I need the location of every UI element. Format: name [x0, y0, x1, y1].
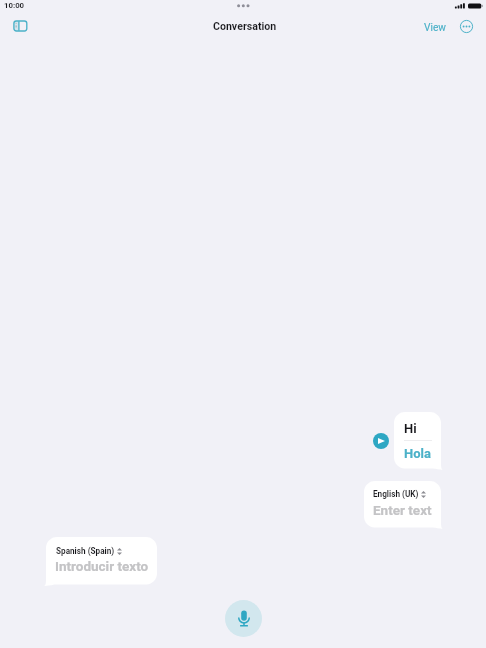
- staticText: Hola: [404, 446, 431, 461]
- button[interactable]: Hi: [394, 412, 443, 470]
- button[interactable]: View: [419, 17, 452, 39]
- staticText: Conversation: [213, 20, 277, 32]
- button[interactable]: Play translation: [373, 433, 389, 449]
- staticText: Introducir texto: [55, 558, 149, 574]
- staticText: 10:00: [4, 1, 25, 10]
- staticText: Hi: [404, 421, 417, 436]
- button[interactable]: Spanish (Spain): [44, 537, 157, 586]
- staticText: Enter text: [373, 502, 432, 518]
- staticText: View: [424, 22, 447, 34]
- button[interactable]: More options: [458, 18, 475, 35]
- button[interactable]: Show sidebar: [9, 16, 32, 39]
- staticText: English (UK): [373, 489, 419, 499]
- button[interactable]: Start voice input: [225, 600, 262, 637]
- button[interactable]: English (UK): [364, 481, 443, 529]
- staticText: Spanish (Spain): [56, 546, 115, 556]
